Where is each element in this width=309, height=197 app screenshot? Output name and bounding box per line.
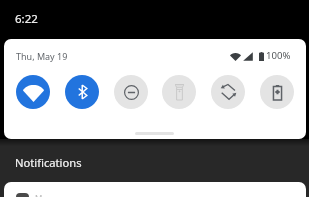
staticText: 100% (266, 49, 291, 62)
staticText: Messages (35, 193, 73, 197)
staticText: Thu, May 19 (16, 50, 68, 62)
staticText: Notifications (15, 155, 82, 170)
staticText: 6:22 (15, 11, 38, 27)
button[interactable]: Bluetooth (65, 75, 99, 109)
button[interactable]: Do not disturb (114, 75, 148, 109)
button[interactable]: Flashlight (162, 75, 196, 109)
button[interactable]: Battery saver (260, 75, 294, 109)
button[interactable]: Wi-Fi (16, 75, 50, 109)
button[interactable]: Auto-rotate (211, 75, 245, 109)
